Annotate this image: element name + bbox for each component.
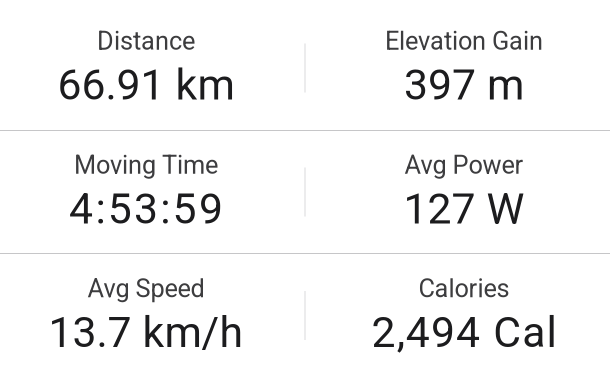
button[interactable]: Moving Time — [0, 150, 292, 234]
staticText: Avg Speed — [87, 274, 204, 303]
button[interactable]: Distance — [0, 26, 292, 110]
staticText: 4:53:59 — [69, 184, 223, 234]
button[interactable]: Calories — [318, 274, 610, 357]
button[interactable]: Avg Speed — [0, 274, 292, 357]
staticText: Calories — [418, 274, 509, 303]
staticText: Elevation Gain — [385, 26, 543, 56]
staticText: 13.7 km/h — [48, 307, 243, 357]
button[interactable]: Elevation Gain — [318, 26, 610, 110]
staticText: 397 m — [404, 60, 524, 110]
staticText: Distance — [97, 26, 195, 56]
staticText: 66.91 km — [57, 60, 234, 110]
staticText: Moving Time — [74, 150, 218, 180]
staticText: 2,494 Cal — [372, 307, 556, 357]
button[interactable]: Avg Power — [318, 150, 610, 234]
staticText: Avg Power — [404, 150, 523, 180]
staticText: 127 W — [403, 184, 524, 234]
